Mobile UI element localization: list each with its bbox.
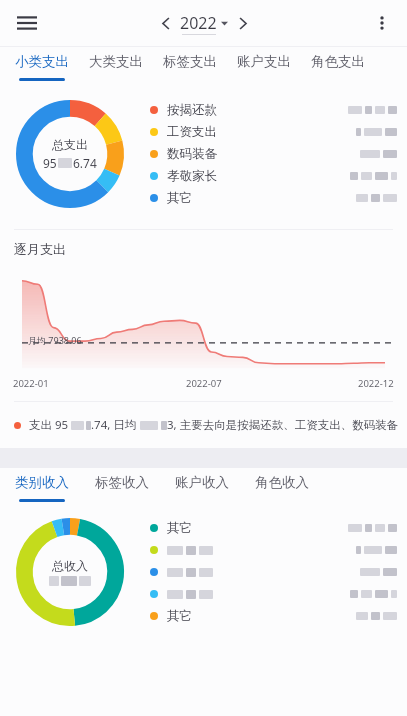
button[interactable]: 小类支出 xyxy=(15,47,69,89)
staticText: 账户收入 xyxy=(175,474,229,491)
button[interactable]: 支出 95 xyxy=(14,402,407,448)
staticText: 总收入 xyxy=(52,558,88,573)
button[interactable]: 工资支出 xyxy=(150,121,407,143)
staticText: 其它 xyxy=(167,608,192,624)
button[interactable]: 账户支出 xyxy=(237,47,291,89)
staticText: 其它 xyxy=(167,520,192,536)
button[interactable]: 角色收入 xyxy=(255,468,309,510)
staticText: 类别收入 xyxy=(15,474,69,491)
staticText: 2022-01 xyxy=(13,377,49,390)
button[interactable]: 孝敬家长 xyxy=(150,165,407,187)
button[interactable]: Previous year xyxy=(152,9,180,37)
staticText: 2022-12 xyxy=(358,377,394,390)
staticText: 2022 xyxy=(180,12,217,34)
staticText: 6.74 xyxy=(73,155,97,171)
button[interactable]: 标签收入 xyxy=(95,468,149,510)
staticText: 大类支出 xyxy=(89,53,143,70)
staticText: 逐月支出 xyxy=(14,241,66,257)
staticText: 标签支出 xyxy=(163,53,217,70)
staticText: 总支出 xyxy=(52,137,88,152)
button[interactable]: 大类支出 xyxy=(89,47,143,89)
staticText: 标签收入 xyxy=(95,474,149,491)
button[interactable]: 标签支出 xyxy=(163,47,217,89)
staticText: 小类支出 xyxy=(15,53,69,70)
staticText: 支出 95 xyxy=(29,417,69,433)
staticText: 账户支出 xyxy=(237,53,291,70)
staticText: 95 xyxy=(43,155,57,171)
button[interactable]: 2022 xyxy=(180,12,228,35)
button[interactable]: 按揭还款 xyxy=(150,99,407,121)
button[interactable]: Next year xyxy=(228,9,256,37)
button[interactable]: 其它 xyxy=(150,605,407,627)
button[interactable]: Menu xyxy=(8,4,46,42)
staticText: 角色支出 xyxy=(311,53,365,70)
button[interactable]: 其它 xyxy=(150,517,407,539)
button[interactable] xyxy=(150,539,407,561)
staticText: 孝敬家长 xyxy=(167,168,217,184)
staticText: 按揭还款 xyxy=(167,102,217,118)
button[interactable]: 其它 xyxy=(150,187,407,209)
button[interactable]: 类别收入 xyxy=(15,468,69,510)
staticText: 2022-07 xyxy=(186,377,222,390)
button[interactable]: 角色支出 xyxy=(311,47,365,89)
staticText: 月均 7938.06 xyxy=(28,334,82,346)
staticText: 3, 主要去向是按揭还款、工资支出、数码装备 xyxy=(167,417,399,433)
staticText: 角色收入 xyxy=(255,474,309,491)
staticText: .74, 日均 xyxy=(91,417,137,433)
button[interactable] xyxy=(150,583,407,605)
button[interactable]: More options xyxy=(363,4,401,42)
button[interactable]: 账户收入 xyxy=(175,468,229,510)
button[interactable] xyxy=(150,561,407,583)
button[interactable]: 数码装备 xyxy=(150,143,407,165)
staticText: 工资支出 xyxy=(167,124,217,140)
staticText: 其它 xyxy=(167,190,192,206)
staticText: 数码装备 xyxy=(167,146,217,162)
